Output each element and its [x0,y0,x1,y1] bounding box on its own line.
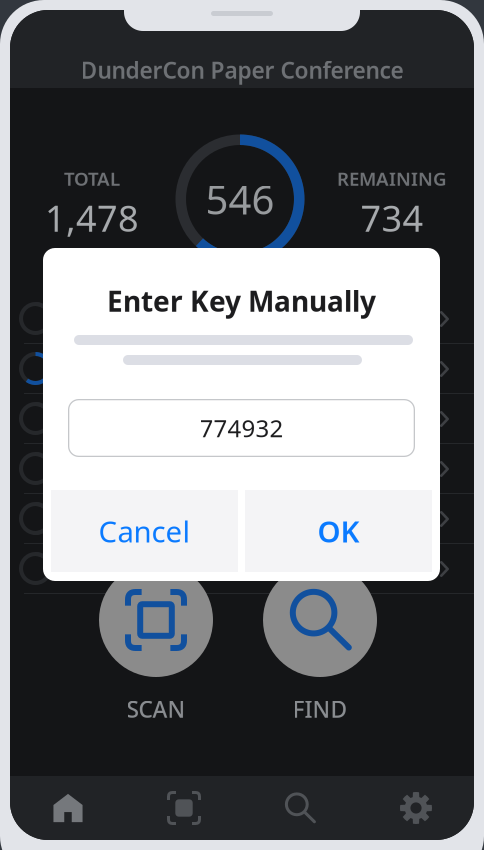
button[interactable] [10,444,474,494]
button[interactable]: FIND [245,563,395,724]
staticText: 546 [205,172,274,225]
staticText: TOTAL [64,166,120,191]
staticText: Cancel [98,511,190,550]
staticText: REMAINING [337,166,447,191]
button[interactable]: Search [242,776,358,840]
button[interactable] [10,394,474,444]
button[interactable]: Cancel [51,490,238,572]
staticText: OK [317,511,359,550]
staticText: 734 [360,194,423,242]
staticText: FIND [292,694,347,724]
button[interactable] [10,294,474,344]
staticText: Enter Key Manually [107,282,376,320]
staticText: 774932 [199,412,283,444]
staticText: SCAN [126,694,185,724]
button[interactable]: Home [10,776,126,840]
button[interactable] [10,544,474,594]
button[interactable] [10,344,474,394]
staticText: DunderCon Paper Conference [80,55,403,85]
button[interactable] [10,494,474,544]
button[interactable]: Settings [358,776,474,840]
staticText: 1,478 [45,194,139,242]
button[interactable]: SCAN [81,563,231,724]
button[interactable]: OK [245,490,432,572]
button[interactable]: Scan [126,776,242,840]
